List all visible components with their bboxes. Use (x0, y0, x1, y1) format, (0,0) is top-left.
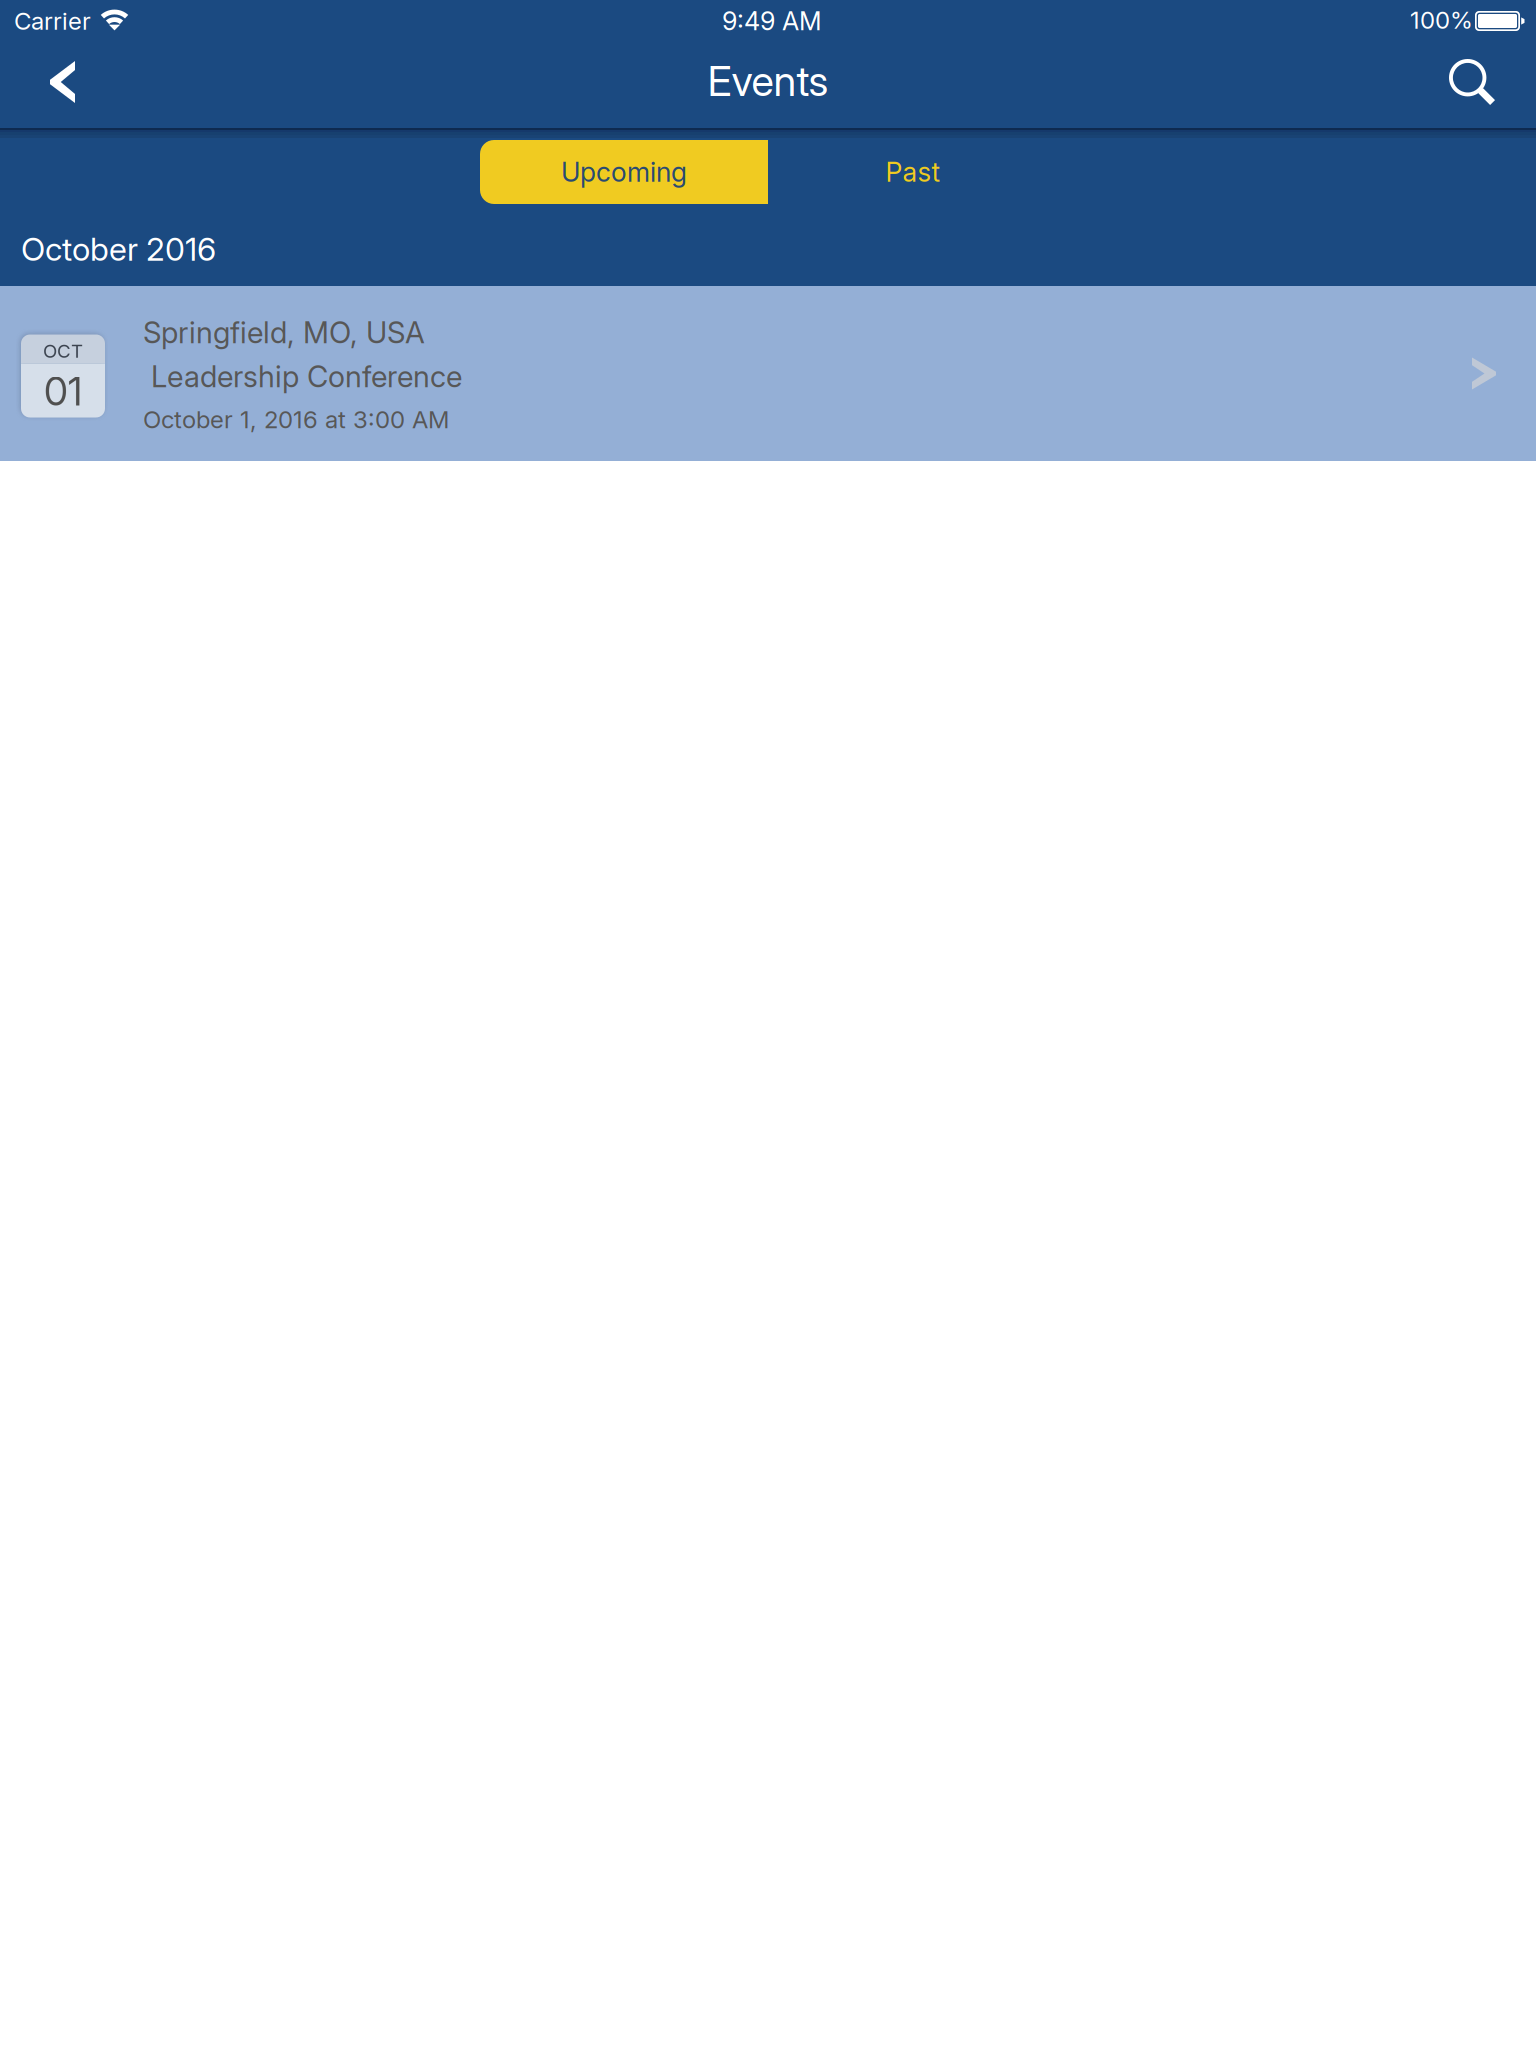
staticText: 01 (44, 368, 82, 415)
button[interactable]: Search (1408, 40, 1536, 128)
staticText: Events (707, 56, 828, 106)
staticText: Upcoming (561, 156, 687, 188)
staticText: Past (885, 156, 940, 188)
staticText: Springfield, MO, USA (143, 315, 425, 350)
staticText: 9:49 AM (722, 6, 822, 36)
button[interactable]: OCT (0, 286, 1536, 461)
staticText: Carrier (14, 6, 91, 35)
button[interactable]: Back (0, 40, 125, 128)
staticText: Leadership Conference (143, 359, 462, 394)
staticText: October 2016 (21, 230, 216, 268)
button[interactable]: Upcoming (480, 140, 768, 204)
staticText: October 1, 2016 at 3:00 AM (143, 405, 449, 434)
staticText: 100% (1410, 5, 1473, 34)
staticText: OCT (43, 340, 83, 362)
button[interactable]: Past (768, 140, 1058, 204)
